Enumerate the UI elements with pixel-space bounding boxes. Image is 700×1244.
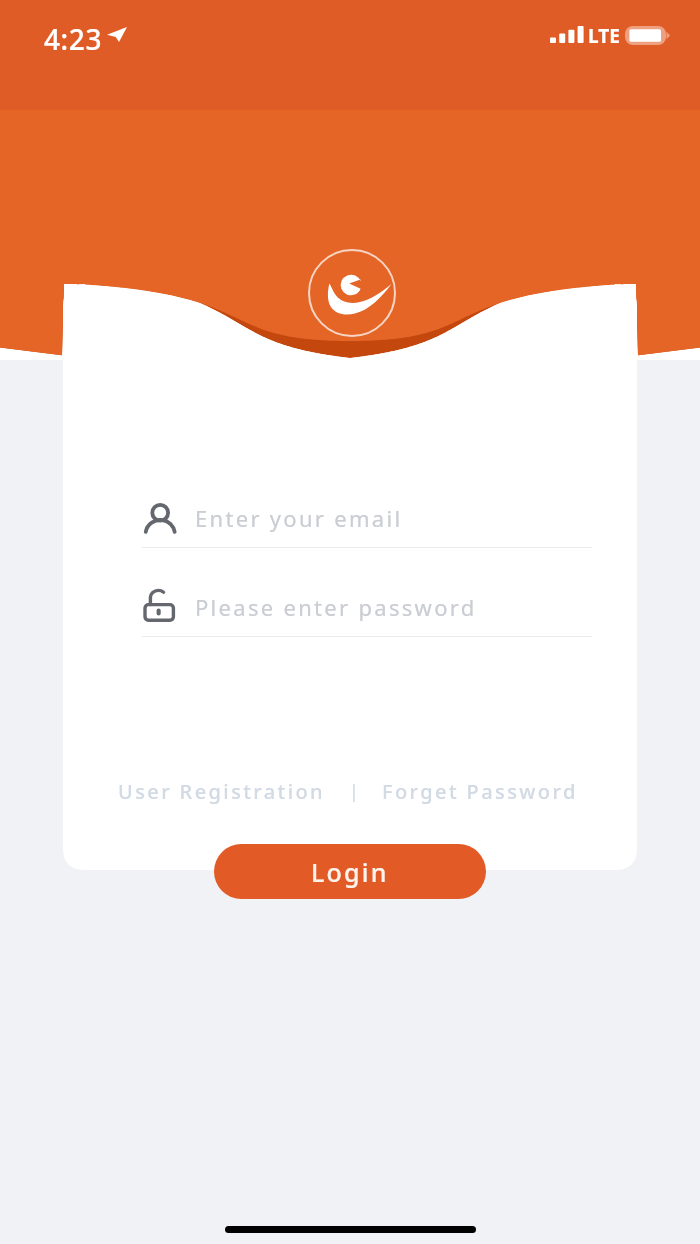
staticText: Forget Password <box>382 778 578 805</box>
button[interactable]: Forget Password <box>382 778 578 805</box>
button[interactable]: User Registration <box>118 778 326 805</box>
staticText: Enter your email <box>195 503 403 533</box>
other: App logo <box>307 248 397 338</box>
staticText: | <box>349 779 359 804</box>
button[interactable]: Enter your email <box>142 498 592 548</box>
staticText: 4:23 <box>44 20 103 58</box>
staticText: Please enter password <box>195 592 477 622</box>
button[interactable]: Please enter password <box>142 587 592 637</box>
staticText: Login <box>311 855 389 889</box>
staticText: LTE <box>588 23 620 49</box>
staticText: User Registration <box>118 778 326 805</box>
button[interactable]: Login <box>214 844 486 899</box>
